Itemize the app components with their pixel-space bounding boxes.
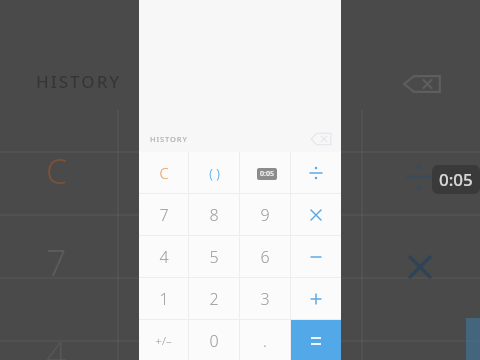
button[interactable]: 7: [139, 194, 188, 236]
button[interactable]: times: [291, 194, 341, 236]
staticText: +/–: [155, 333, 172, 349]
button[interactable]: +/–: [139, 320, 188, 360]
staticText: 2: [209, 288, 219, 310]
staticText: HISTORY: [36, 70, 122, 93]
staticText: 8: [209, 204, 219, 226]
button[interactable]: divide: [291, 152, 341, 194]
button[interactable]: C: [139, 152, 188, 194]
button[interactable]: Backspace: [310, 131, 332, 147]
button[interactable]: 1: [139, 278, 188, 320]
staticText: 5: [209, 246, 219, 268]
staticText: 1: [159, 288, 169, 310]
staticText: %: [260, 164, 271, 182]
staticText: C: [159, 163, 169, 183]
staticText: 0:05: [439, 168, 473, 191]
button[interactable]: %: [240, 152, 290, 194]
staticText: 7: [46, 238, 67, 287]
staticText: 7: [159, 204, 169, 226]
staticText: 0: [209, 330, 219, 352]
staticText: 4: [159, 246, 169, 268]
button[interactable]: 4: [139, 236, 188, 278]
staticText: .: [263, 330, 267, 352]
staticText: 3: [260, 288, 270, 310]
button[interactable]: 2: [189, 278, 239, 320]
button[interactable]: 6: [240, 236, 290, 278]
button[interactable]: equals: [291, 320, 341, 360]
button[interactable]: 8: [189, 194, 239, 236]
button[interactable]: minus: [291, 236, 341, 278]
button[interactable]: plus: [291, 278, 341, 320]
button[interactable]: 3: [240, 278, 290, 320]
button[interactable]: 9: [240, 194, 290, 236]
staticText: C: [46, 148, 68, 194]
staticText: 4: [46, 330, 67, 360]
staticText: 0:05: [260, 169, 274, 179]
staticText: 9: [260, 204, 270, 226]
staticText: ( ): [209, 164, 220, 182]
staticText: HISTORY: [150, 134, 188, 144]
button[interactable]: 5: [189, 236, 239, 278]
button[interactable]: ( ): [189, 152, 239, 194]
button[interactable]: HISTORY: [150, 134, 188, 144]
staticText: 6: [260, 246, 270, 268]
button[interactable]: 0: [189, 320, 239, 360]
